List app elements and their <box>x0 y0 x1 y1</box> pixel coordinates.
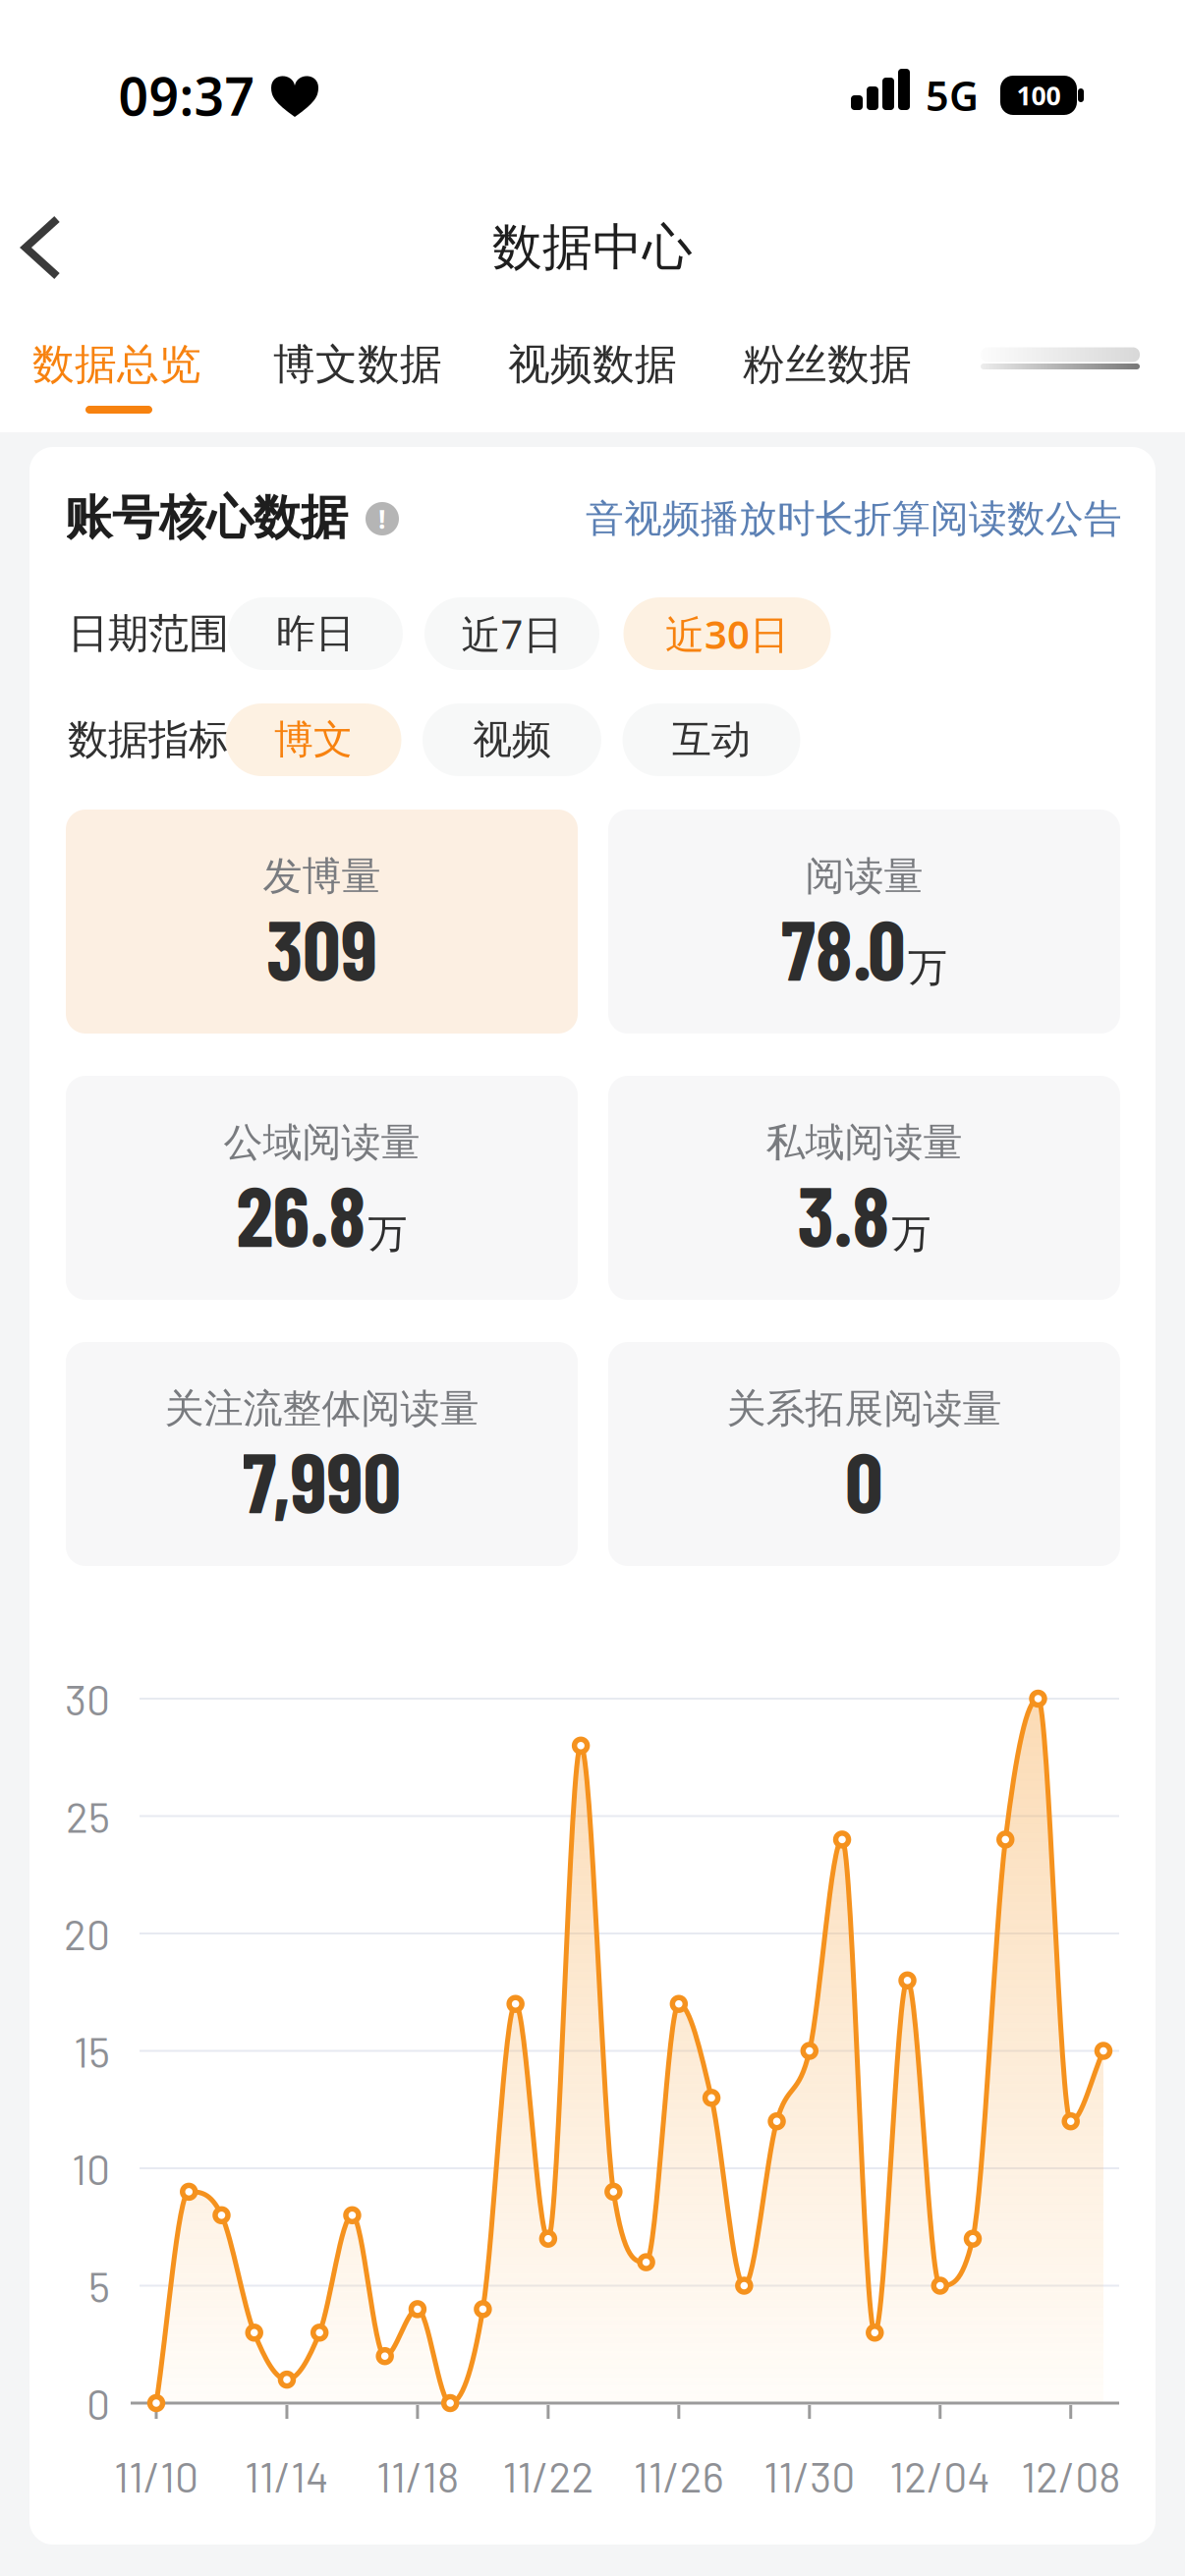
button[interactable]: 视频数据 <box>480 320 705 409</box>
staticText: 11/10 <box>114 2451 198 2501</box>
button[interactable]: Back <box>12 212 94 283</box>
staticText: 30 <box>65 1674 110 1724</box>
staticText: 7,990 <box>242 1429 401 1530</box>
staticText: 5 <box>88 2261 110 2311</box>
staticText: 私域阅读量 <box>766 1118 962 1167</box>
staticText: 日期范围 <box>68 609 229 659</box>
staticText: 数据总览 <box>32 339 201 390</box>
staticText: 3.8 <box>797 1163 890 1264</box>
button[interactable]: 博文数据 <box>245 320 471 409</box>
staticText: 关注流整体阅读量 <box>165 1385 479 1433</box>
staticText: 11/26 <box>634 2451 724 2501</box>
staticText: 12/08 <box>1021 2451 1120 2501</box>
button[interactable]: 近30日 <box>623 597 831 670</box>
staticText: 100 <box>1016 78 1061 113</box>
staticText: 20 <box>64 1908 110 1959</box>
staticText: 0 <box>845 1429 883 1530</box>
staticText: 09:37 <box>118 61 255 130</box>
staticText: 音视频播放时长折算阅读数公告 <box>586 495 1122 542</box>
staticText: 视频 <box>473 716 551 764</box>
button[interactable]: 关注流整体阅读量 <box>66 1342 578 1566</box>
staticText: 博文数据 <box>273 339 442 390</box>
button[interactable]: 粉丝数据 <box>714 320 940 409</box>
staticText: 视频数据 <box>508 339 677 390</box>
staticText: 关系拓展阅读量 <box>727 1385 1002 1433</box>
staticText: 25 <box>66 1791 110 1841</box>
staticText: 数据指标 <box>68 715 229 765</box>
button[interactable]: 关系拓展阅读量 <box>608 1342 1120 1566</box>
staticText: 近30日 <box>665 608 789 660</box>
staticText: 10 <box>72 2143 110 2193</box>
staticText: 11/14 <box>245 2451 329 2501</box>
staticText: 数据中心 <box>492 217 693 278</box>
button[interactable]: 视频 <box>423 703 601 776</box>
staticText: 互动 <box>672 716 751 764</box>
staticText: 阅读量 <box>805 852 923 900</box>
staticText: 11/22 <box>502 2451 594 2501</box>
staticText: 0 <box>86 2378 110 2428</box>
button[interactable]: 阅读量 <box>608 810 1120 1034</box>
staticText: 15 <box>74 2026 110 2076</box>
staticText: 26.8 <box>236 1163 366 1264</box>
staticText: 309 <box>266 897 377 997</box>
button[interactable]: Info <box>366 501 399 536</box>
staticText: 12/04 <box>890 2451 991 2501</box>
button[interactable]: 互动 <box>622 703 800 776</box>
button[interactable]: 博文 <box>226 703 401 776</box>
staticText: 78.0 <box>781 897 906 997</box>
button[interactable]: 音视频播放时长折算阅读数公告 <box>513 495 1122 542</box>
button[interactable]: 昨日 <box>228 597 403 670</box>
staticText: 发博量 <box>263 852 381 900</box>
staticText: 万 <box>368 1210 407 1258</box>
button[interactable]: 公域阅读量 <box>66 1076 578 1300</box>
staticText: 公域阅读量 <box>224 1118 420 1167</box>
staticText: 粉丝数据 <box>743 339 912 390</box>
staticText: 账号核心数据 <box>65 489 348 547</box>
staticText: 11/30 <box>764 2451 855 2501</box>
staticText: 近7日 <box>461 608 563 660</box>
staticText: 昨日 <box>276 610 355 658</box>
staticText: 万 <box>892 1210 931 1258</box>
button[interactable]: 私域阅读量 <box>608 1076 1120 1300</box>
staticText: 5G <box>926 68 979 122</box>
button[interactable]: 近7日 <box>424 597 599 670</box>
staticText: 11/18 <box>376 2451 459 2501</box>
button[interactable]: 数据总览 <box>4 320 230 409</box>
staticText: ! <box>378 501 386 536</box>
button[interactable]: 发博量 <box>66 810 578 1034</box>
staticText: 博文 <box>274 716 353 764</box>
staticText: 万 <box>908 943 947 992</box>
